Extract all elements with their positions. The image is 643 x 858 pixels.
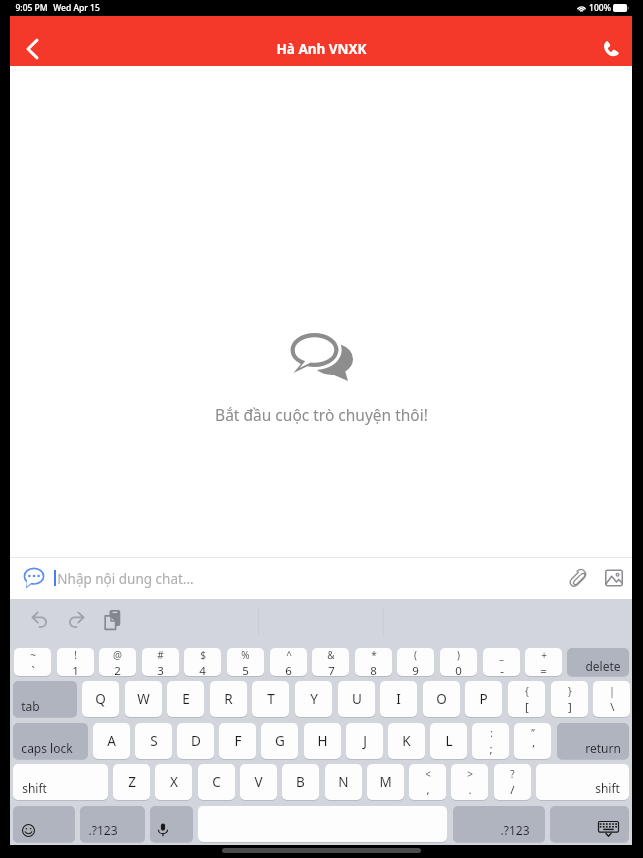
- button[interactable]: F: [219, 723, 256, 759]
- button[interactable]: D: [177, 723, 214, 759]
- button[interactable]: <: [409, 764, 446, 800]
- staticText: E: [182, 690, 190, 708]
- button[interactable]: |: [593, 681, 630, 717]
- staticText: +: [541, 648, 547, 662]
- button[interactable]: ): [440, 648, 477, 676]
- button[interactable]: .?123: [453, 806, 545, 842]
- staticText: A: [107, 732, 116, 750]
- staticText: V: [254, 773, 263, 791]
- button[interactable]: Dictation: [150, 806, 193, 842]
- button[interactable]: T: [252, 681, 289, 717]
- button[interactable]: S: [135, 723, 172, 759]
- staticText: S: [150, 732, 158, 750]
- staticText: P: [479, 690, 488, 708]
- button[interactable]: A: [93, 723, 130, 759]
- button[interactable]: B: [282, 764, 319, 800]
- button[interactable]: tab: [13, 681, 77, 717]
- button[interactable]: Undo: [23, 603, 55, 635]
- staticText: !: [74, 648, 77, 662]
- button[interactable]: Redo: [60, 603, 92, 635]
- staticText: =: [540, 663, 547, 676]
- button[interactable]: _: [483, 648, 520, 676]
- staticText: caps lock: [21, 740, 73, 756]
- staticText: 9:05 PM: [15, 2, 48, 14]
- button[interactable]: L: [430, 723, 467, 759]
- button[interactable]: #: [142, 648, 179, 676]
- button[interactable]: ^: [270, 648, 307, 676]
- staticText: &: [327, 648, 335, 662]
- staticText: 6: [285, 663, 292, 676]
- button[interactable]: Paste: [96, 603, 128, 635]
- button[interactable]: $: [184, 648, 221, 676]
- button[interactable]: P: [465, 681, 502, 717]
- staticText: U: [352, 690, 362, 708]
- staticText: tab: [21, 698, 40, 714]
- button[interactable]: Call: [587, 16, 632, 67]
- button[interactable]: @: [99, 648, 136, 676]
- staticText: |: [609, 684, 615, 698]
- button[interactable]: ”: [514, 723, 551, 759]
- button[interactable]: }: [551, 681, 588, 717]
- button[interactable]: W: [125, 681, 162, 717]
- button[interactable]: X: [155, 764, 192, 800]
- staticText: ?: [510, 767, 515, 781]
- button[interactable]: I: [380, 681, 417, 717]
- button[interactable]: *: [355, 648, 392, 676]
- button[interactable]: Hide keyboard: [550, 806, 629, 842]
- button[interactable]: shift: [13, 764, 108, 800]
- button[interactable]: U: [338, 681, 375, 717]
- button[interactable]: %: [227, 648, 264, 676]
- staticText: %: [241, 648, 250, 662]
- button[interactable]: Attach file: [562, 562, 594, 594]
- button[interactable]: {: [508, 681, 545, 717]
- button[interactable]: (: [397, 648, 434, 676]
- button[interactable]: K: [388, 723, 425, 759]
- staticText: ”: [531, 726, 535, 740]
- button[interactable]: >: [451, 764, 488, 800]
- staticText: Wed Apr 15: [53, 2, 100, 14]
- button[interactable]: ?: [494, 764, 531, 800]
- button[interactable]: J: [346, 723, 383, 759]
- staticText: ,: [426, 782, 430, 798]
- button[interactable]: R: [210, 681, 247, 717]
- button[interactable]: &: [312, 648, 349, 676]
- staticText: D: [191, 732, 201, 750]
- button[interactable]: E: [167, 681, 204, 717]
- button[interactable]: delete: [567, 648, 629, 676]
- button[interactable]: return: [557, 723, 629, 759]
- button[interactable]: Send image: [598, 562, 630, 594]
- staticText: ): [457, 648, 460, 662]
- staticText: N: [338, 773, 349, 791]
- button[interactable]: G: [261, 723, 298, 759]
- staticText: \: [610, 699, 615, 715]
- button[interactable]: +: [525, 648, 562, 676]
- button[interactable]: Emoji: [13, 806, 75, 842]
- button[interactable]: V: [240, 764, 277, 800]
- button[interactable]: Z: [113, 764, 150, 800]
- button[interactable]: N: [325, 764, 362, 800]
- staticText: 7: [328, 663, 335, 676]
- button[interactable]: C: [198, 764, 235, 800]
- staticText: 4: [199, 663, 206, 676]
- button[interactable]: shift: [536, 764, 629, 800]
- staticText: @: [113, 648, 122, 662]
- button[interactable]: ~: [14, 648, 51, 676]
- staticText: <: [425, 767, 431, 781]
- staticText: .: [468, 782, 472, 798]
- button[interactable]: Stickers: [19, 563, 49, 593]
- staticText: *: [371, 648, 377, 662]
- button[interactable]: Q: [82, 681, 119, 717]
- staticText: 5: [242, 663, 249, 676]
- button[interactable]: caps lock: [13, 723, 88, 759]
- button[interactable]: M: [367, 764, 404, 800]
- button[interactable]: H: [304, 723, 341, 759]
- button[interactable]: O: [423, 681, 460, 717]
- button[interactable]: :: [472, 723, 509, 759]
- staticText: 0: [455, 663, 462, 676]
- button[interactable]: Y: [295, 681, 332, 717]
- button[interactable]: !: [57, 648, 94, 676]
- button[interactable]: .?123: [80, 806, 145, 842]
- button[interactable]: Back: [10, 16, 54, 67]
